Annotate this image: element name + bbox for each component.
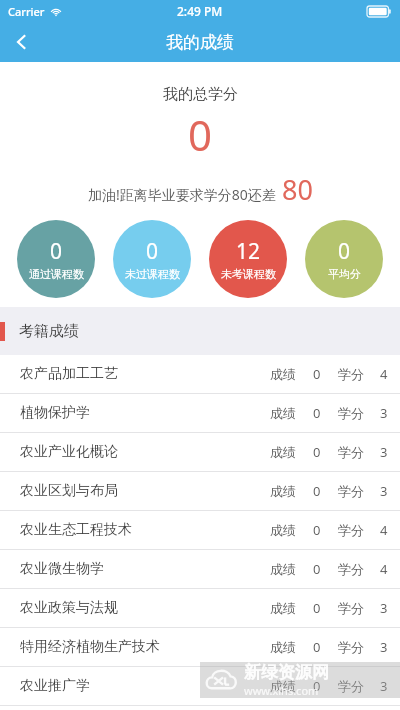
staticText: 2:49 PM (177, 3, 223, 19)
staticText: 3 (380, 638, 388, 656)
button[interactable]: 农业政策与法规 (0, 589, 400, 628)
staticText: 特用经济植物生产技术 (20, 638, 160, 656)
staticText: 学分 (338, 600, 364, 616)
staticText: 学分 (338, 444, 364, 460)
staticText: 0 (313, 482, 321, 500)
staticText: 0 (313, 521, 321, 539)
staticText: 成绩 (270, 483, 296, 499)
staticText: 0 (313, 443, 321, 461)
staticText: 学分 (338, 639, 364, 655)
staticText: 学分 (338, 678, 364, 694)
staticText: 3 (380, 599, 388, 617)
staticText: 农业生态工程技术 (20, 521, 132, 539)
staticText: 0 (146, 237, 159, 266)
staticText: 成绩 (270, 522, 296, 538)
staticText: 3 (380, 482, 388, 500)
button[interactable]: 0 (17, 220, 95, 298)
staticText: 成绩 (270, 366, 296, 382)
staticText: 0 (313, 638, 321, 656)
button[interactable]: Back (0, 22, 44, 62)
staticText: 成绩 (270, 600, 296, 616)
staticText: 0 (313, 599, 321, 617)
staticText: 成绩 (270, 561, 296, 577)
staticText: Carrier (8, 4, 45, 19)
staticText: 成绩 (270, 405, 296, 421)
button[interactable]: 0 (113, 220, 191, 298)
staticText: 成绩 (270, 639, 296, 655)
staticText: 成绩 (270, 444, 296, 460)
staticText: 我的成绩 (166, 32, 234, 53)
staticText: 4 (380, 521, 388, 539)
staticText: 新绿资源网 (244, 662, 329, 683)
staticText: 通过课程数 (29, 267, 84, 281)
staticText: 0 (313, 560, 321, 578)
button[interactable]: 植物保护学 (0, 394, 400, 433)
staticText: 农业区划与布局 (20, 482, 118, 500)
staticText: 农业微生物学 (20, 560, 104, 578)
staticText: 12 (236, 237, 261, 266)
staticText: 0 (313, 677, 321, 695)
staticText: 农业政策与法规 (20, 599, 118, 617)
button[interactable]: 0 (305, 220, 383, 298)
button[interactable]: 农业生态工程技术 (0, 511, 400, 550)
staticText: 4 (380, 365, 388, 383)
staticText: 学分 (338, 561, 364, 577)
staticText: www.xlhs.com (244, 683, 319, 698)
staticText: 80 (282, 171, 313, 208)
staticText: 我的总学分 (163, 85, 238, 104)
staticText: 学分 (338, 366, 364, 382)
staticText: 0 (338, 237, 351, 266)
staticText: 3 (380, 677, 388, 695)
button[interactable]: 特用经济植物生产技术 (0, 628, 400, 667)
staticText: 学分 (338, 483, 364, 499)
staticText: 0 (313, 365, 321, 383)
button[interactable]: 农业微生物学 (0, 550, 400, 589)
staticText: 0 (188, 106, 213, 163)
button[interactable]: 农业推广学 (0, 667, 400, 706)
staticText: 3 (380, 404, 388, 422)
button[interactable]: 农业产业化概论 (0, 433, 400, 472)
staticText: 0 (50, 237, 63, 266)
staticText: 0 (313, 404, 321, 422)
staticText: 3 (380, 443, 388, 461)
staticText: 平均分 (328, 267, 361, 281)
staticText: 考籍成绩 (19, 322, 79, 341)
staticText: 农产品加工工艺 (20, 365, 118, 383)
staticText: 植物保护学 (20, 404, 90, 422)
button[interactable]: 农产品加工工艺 (0, 355, 400, 394)
button[interactable]: 农业区划与布局 (0, 472, 400, 511)
staticText: 未考课程数 (221, 267, 276, 281)
staticText: 学分 (338, 405, 364, 421)
staticText: 农业推广学 (20, 677, 90, 695)
button[interactable]: 12 (209, 220, 287, 298)
staticText: 未过课程数 (125, 267, 180, 281)
staticText: 加油!距离毕业要求学分80还差 (88, 185, 276, 204)
staticText: 成绩 (270, 678, 296, 694)
staticText: 农业产业化概论 (20, 443, 118, 461)
staticText: 学分 (338, 522, 364, 538)
staticText: 4 (380, 560, 388, 578)
